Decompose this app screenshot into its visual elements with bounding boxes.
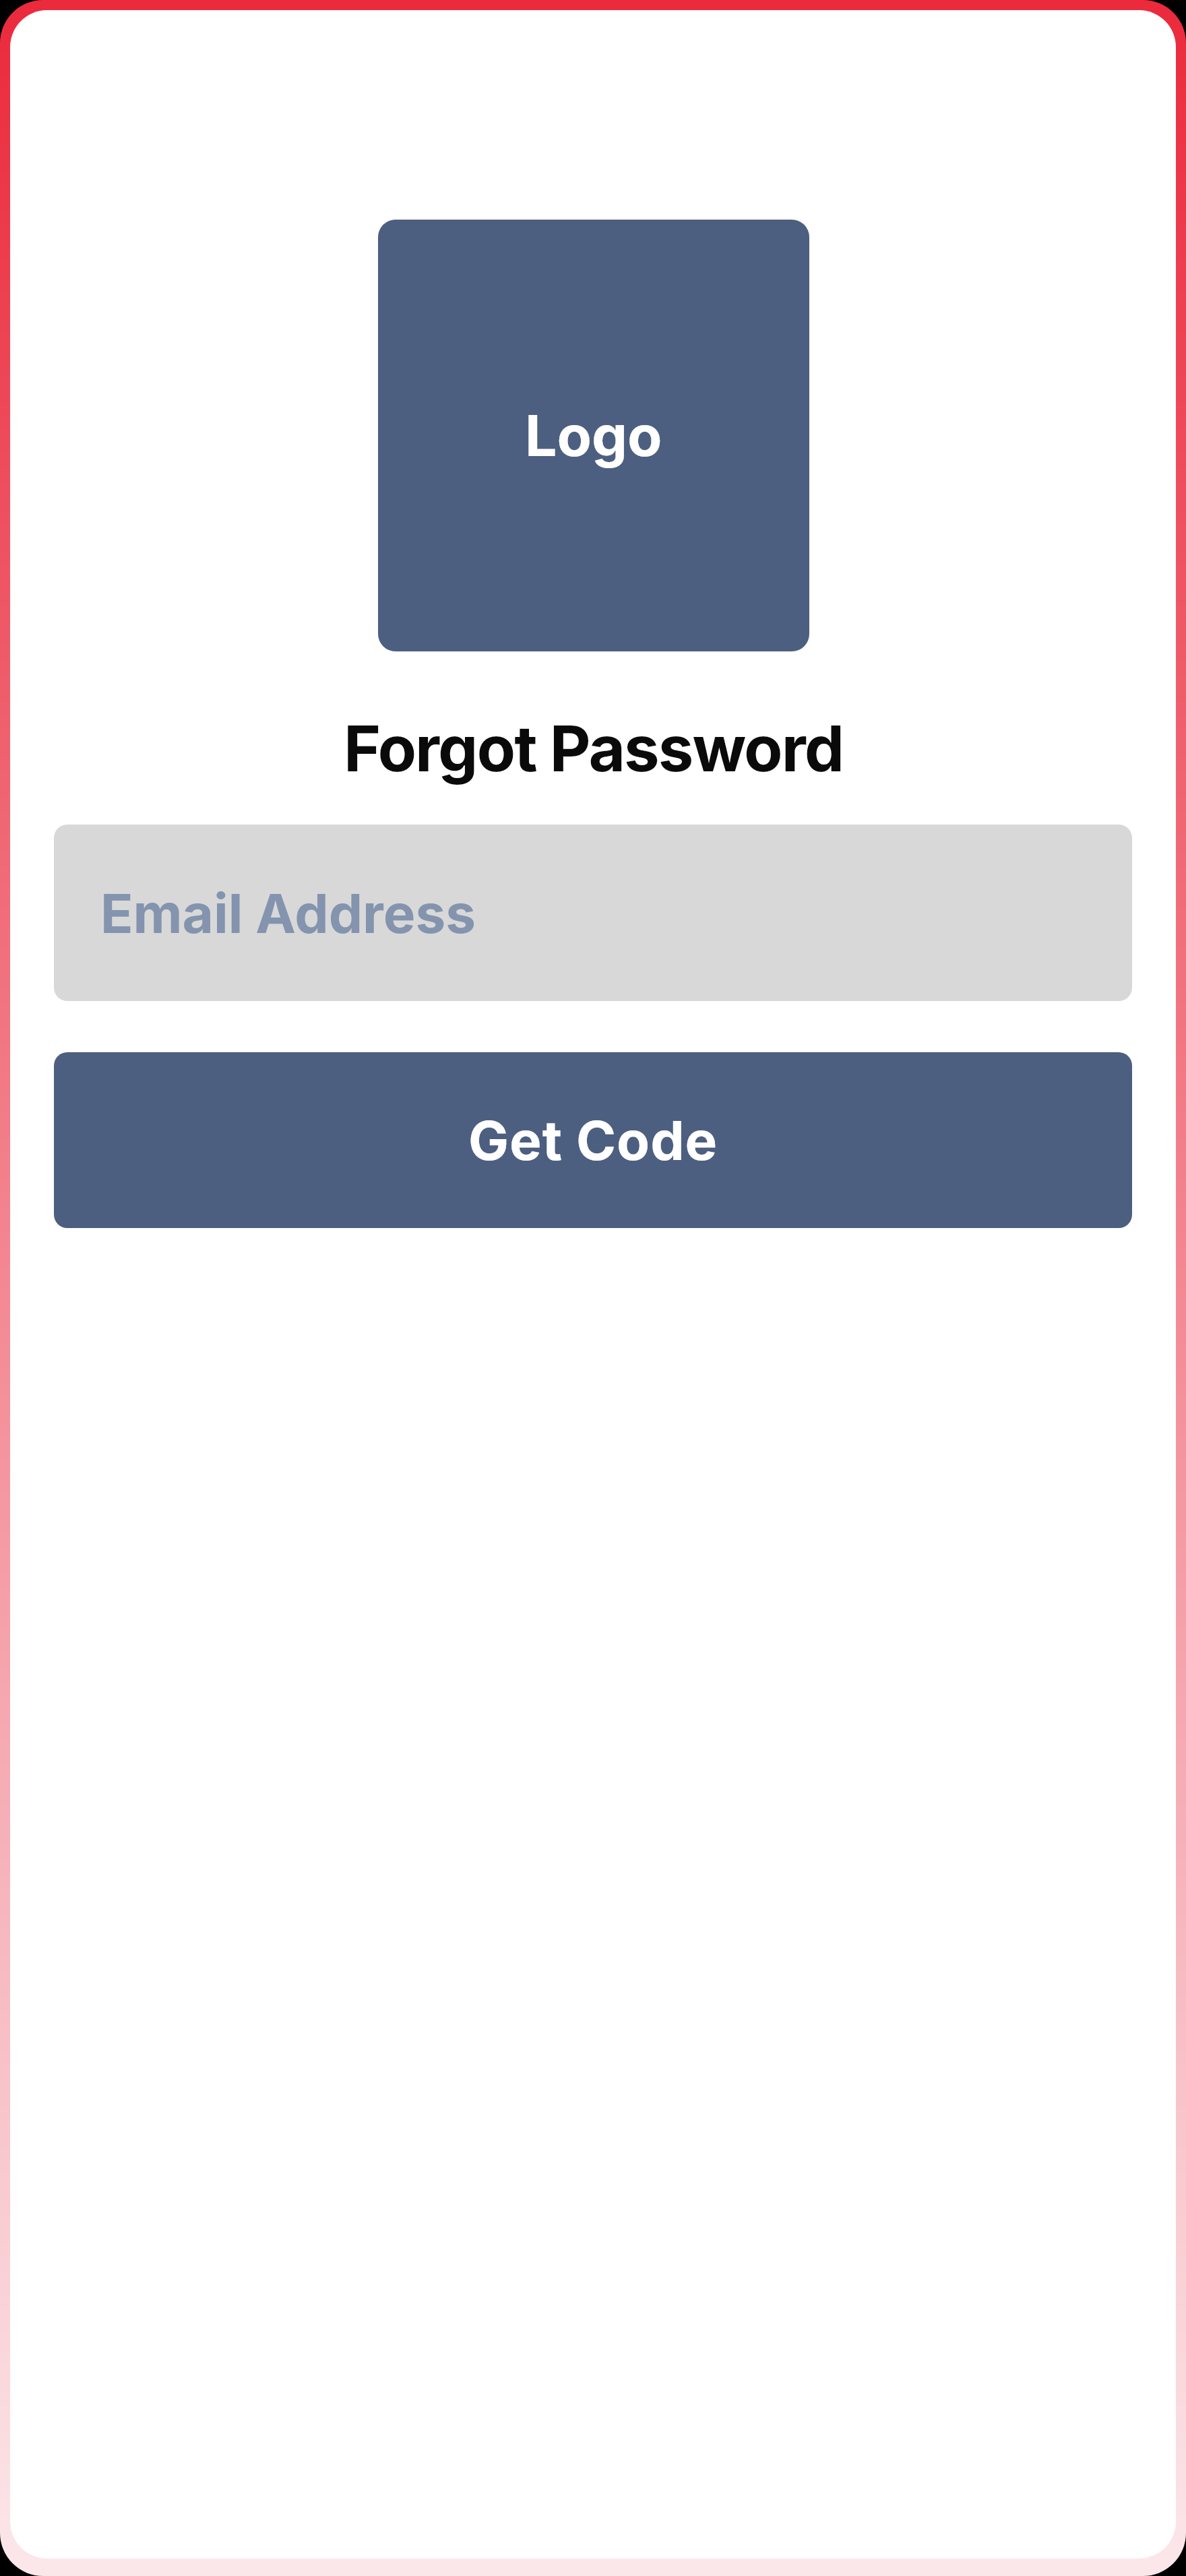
button[interactable]: Get Code (54, 1052, 1132, 1228)
button[interactable]: Email Address (54, 825, 1132, 1001)
staticText: Forgot Password (344, 710, 843, 787)
staticText: Email Address (100, 880, 476, 946)
staticText: Logo (525, 401, 662, 470)
staticText: Get Code (468, 1107, 718, 1173)
